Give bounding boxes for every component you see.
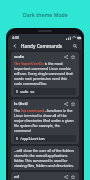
staticText: sudo <box>14 54 25 60</box>
staticText: Dark theme Mode <box>23 11 68 18</box>
staticText: 4:08 <box>12 35 20 40</box>
button[interactable]: Favorite <box>70 54 76 60</box>
staticText: …will show the user all of the folders s… <box>14 148 76 168</box>
staticText: cd <box>14 174 19 180</box>
button[interactable]: Share <box>63 101 69 107</box>
staticText: The list command –functions in the Linux… <box>14 108 76 133</box>
staticText: $ sudo su <box>16 89 35 94</box>
button[interactable]: Share <box>63 54 69 60</box>
button[interactable]: Favorite <box>70 101 76 107</box>
button[interactable]: …will show the user all of the folders s… <box>11 146 79 170</box>
button[interactable]: cd <box>11 172 79 180</box>
button[interactable]: Back <box>11 42 19 50</box>
button[interactable]: Search <box>71 42 79 50</box>
staticText: ls (list) <box>14 101 28 107</box>
button[interactable]: sudo <box>11 52 79 97</box>
staticText: Handy Commands <box>21 43 63 49</box>
staticText: The SuperUserDo is the most important co… <box>14 61 76 86</box>
button[interactable]: ls (list) <box>11 99 79 144</box>
staticText: $ /application <box>16 136 45 141</box>
button[interactable]: Share <box>63 174 69 180</box>
button[interactable]: Favorite <box>70 174 76 180</box>
